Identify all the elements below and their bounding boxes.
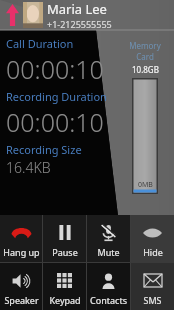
- staticText: Pause: [52, 246, 78, 258]
- button[interactable]: Speaker: [0, 263, 42, 310]
- button[interactable]: Hang up: [0, 215, 42, 262]
- staticText: Recording Size: [6, 142, 82, 157]
- button[interactable]: [23, 2, 43, 28]
- button[interactable]: 0MB: [132, 78, 158, 194]
- staticText: 16.4KB: [6, 158, 51, 177]
- staticText: 00:00:10: [6, 105, 104, 139]
- button[interactable]: Keypad: [43, 263, 86, 310]
- button[interactable]: Pause: [43, 215, 86, 262]
- staticText: Card: [136, 51, 154, 62]
- staticText: +1-2125555555: [47, 18, 112, 30]
- staticText: Call Duration: [6, 36, 74, 51]
- button[interactable]: Mute: [87, 215, 130, 262]
- staticText: Keypad: [49, 294, 81, 306]
- button[interactable]: Contacts: [87, 263, 130, 310]
- button[interactable]: Expand: [4, 2, 20, 28]
- staticText: 10.8GB: [132, 64, 159, 75]
- staticText: Mute: [97, 246, 120, 258]
- staticText: 00:00:10: [6, 52, 104, 86]
- staticText: Hang up: [3, 246, 40, 258]
- staticText: Memory: [129, 40, 161, 51]
- staticText: Maria Lee: [47, 0, 107, 18]
- staticText: SMS: [143, 294, 162, 306]
- button[interactable]: Hide: [131, 215, 174, 262]
- staticText: Hide: [143, 246, 163, 258]
- staticText: Contacts: [90, 294, 127, 306]
- staticText: Recording Duration: [6, 89, 107, 104]
- button[interactable]: SMS: [131, 263, 174, 310]
- staticText: 0MB: [138, 180, 153, 190]
- staticText: Speaker: [4, 294, 39, 306]
